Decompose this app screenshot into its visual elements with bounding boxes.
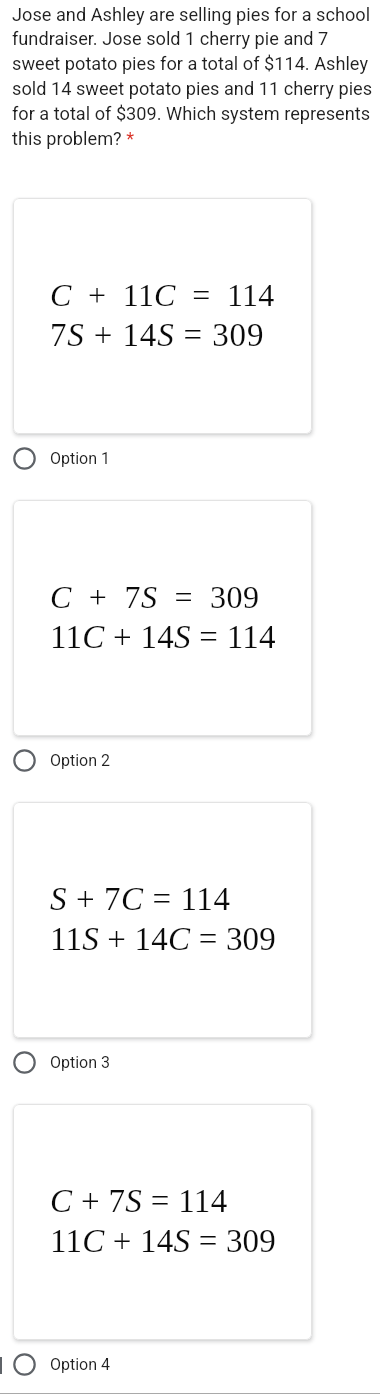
staticText: 7S + 14S = 309 bbox=[50, 317, 265, 354]
staticText: C + 7S = 114 bbox=[50, 1183, 228, 1220]
button[interactable]: Option 1 bbox=[0, 441, 380, 475]
button[interactable]: Answer choice 1 equations bbox=[13, 198, 312, 434]
staticText: Option 2 bbox=[50, 751, 111, 770]
button[interactable]: Option 3 bbox=[0, 1045, 380, 1079]
button[interactable]: Option 2 bbox=[0, 743, 380, 777]
staticText: 11C + 14S = 114 bbox=[50, 619, 276, 656]
staticText: Option 3 bbox=[50, 1053, 111, 1072]
staticText: Option 1 bbox=[50, 449, 111, 468]
staticText: 11S + 14C = 309 bbox=[50, 921, 277, 958]
staticText: S + 7C = 114 bbox=[50, 881, 231, 918]
staticText: C + 11C = 114 bbox=[50, 277, 275, 312]
staticText: 11C + 14S = 309 bbox=[50, 1223, 277, 1260]
button[interactable]: Answer choice 4 equations bbox=[13, 1104, 312, 1340]
button[interactable]: Option 4 bbox=[0, 1347, 380, 1381]
button[interactable]: Answer choice 3 equations bbox=[13, 802, 312, 1038]
button[interactable]: Answer choice 2 equations bbox=[13, 500, 312, 736]
staticText: Option 4 bbox=[50, 1355, 111, 1374]
staticText: C + 7S = 309 bbox=[50, 579, 260, 614]
staticText: Jose and Ashley are selling pies for a s… bbox=[12, 4, 374, 150]
